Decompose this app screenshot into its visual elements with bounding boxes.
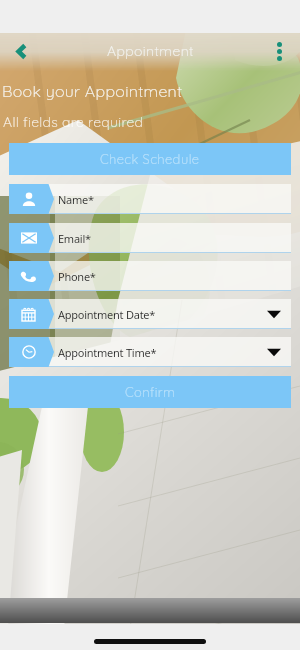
button[interactable]: Back [6, 36, 36, 66]
button[interactable]: Appointment Date* [9, 299, 291, 329]
staticText: Check Schedule [100, 151, 200, 167]
staticText: Email* [58, 231, 91, 246]
button[interactable]: Email* [9, 223, 291, 253]
button[interactable]: Phone* [9, 261, 291, 291]
staticText: Appointment Time* [58, 345, 157, 360]
button[interactable]: Check Schedule [9, 143, 291, 175]
staticText: Appointment [107, 42, 194, 60]
staticText: Appointment Date* [58, 307, 156, 322]
button[interactable]: Name* [9, 184, 291, 214]
staticText: Confirm [125, 384, 176, 400]
button[interactable]: More options [264, 36, 294, 66]
staticText: Phone* [58, 269, 96, 284]
staticText: Book your Appointment [2, 81, 183, 101]
button[interactable]: Appointment Time* [9, 337, 291, 367]
staticText: All fields are required [3, 113, 144, 131]
button[interactable]: Confirm [9, 376, 291, 408]
staticText: Name* [58, 192, 94, 207]
